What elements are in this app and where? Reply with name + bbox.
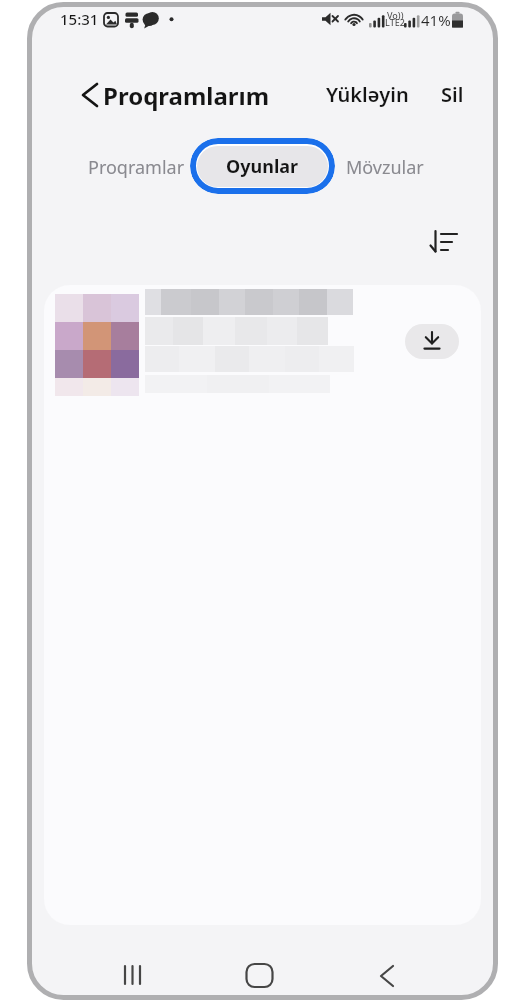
staticText: Mövzular xyxy=(346,155,424,180)
staticText: Oyunlar xyxy=(226,154,299,179)
staticText: LTE2 xyxy=(385,16,405,28)
button[interactable] xyxy=(405,324,459,359)
staticText: 41% xyxy=(421,10,451,30)
staticText: Vo)) xyxy=(387,9,404,21)
button[interactable] xyxy=(420,222,468,262)
staticText: Yükləyin xyxy=(326,81,409,108)
staticText: 15:31 xyxy=(60,9,99,29)
button[interactable] xyxy=(105,956,145,994)
staticText: Sil xyxy=(441,81,464,108)
button[interactable] xyxy=(370,956,410,994)
button[interactable]: Proqramlar xyxy=(76,150,196,184)
button[interactable] xyxy=(240,956,280,994)
button[interactable] xyxy=(66,76,110,116)
button[interactable]: Yükləyin xyxy=(316,74,418,114)
button[interactable]: Oyunlar xyxy=(190,138,335,194)
staticText: Proqramlar xyxy=(88,155,185,180)
staticText: Proqramlarım xyxy=(103,79,270,112)
button[interactable]: Mövzular xyxy=(325,150,445,184)
button[interactable]: Sil xyxy=(426,74,478,114)
